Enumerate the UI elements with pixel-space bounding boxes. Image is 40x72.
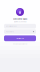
staticText: Welcome Back — [13, 17, 27, 20]
button[interactable]: Forgot password? — [12, 43, 27, 45]
staticText: Email address — [6, 25, 17, 27]
button[interactable]: Sign In — [4, 36, 36, 41]
staticText: Sign In — [16, 37, 23, 40]
staticText: Password — [6, 30, 14, 33]
staticText: Forgot password? — [12, 43, 27, 45]
staticText: Sign in to continue — [13, 20, 26, 23]
